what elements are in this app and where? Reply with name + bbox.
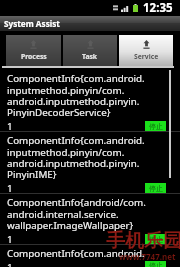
staticText: ComponentInfo{com.android. inputmethod.p… bbox=[7, 72, 145, 119]
staticText: Service bbox=[134, 52, 159, 61]
button[interactable]: Task bbox=[63, 35, 117, 66]
button[interactable]: ComponentInfo{com.android. bbox=[0, 245, 180, 267]
staticText: 停止 bbox=[149, 122, 163, 131]
button[interactable]: 停止 bbox=[145, 121, 166, 131]
staticText: www.7747.net bbox=[119, 251, 176, 262]
button[interactable]: 停止 bbox=[145, 234, 166, 244]
staticText: Task bbox=[82, 52, 98, 61]
staticText: System Assist bbox=[4, 18, 60, 29]
staticText: 1 bbox=[7, 182, 13, 193]
button[interactable]: 停止 bbox=[145, 183, 166, 193]
staticText: 12:35 bbox=[143, 0, 173, 16]
staticText: 手机乐园 bbox=[106, 229, 180, 253]
staticText: 停止 bbox=[149, 235, 163, 244]
button[interactable]: ComponentInfo{com.android. inputmethod.p… bbox=[0, 70, 180, 132]
button[interactable]: ComponentInfo{com.android. inputmethod.p… bbox=[0, 132, 180, 194]
staticText: Process bbox=[21, 52, 47, 61]
staticText: 停止 bbox=[149, 261, 163, 267]
staticText: 1 bbox=[7, 261, 13, 267]
button[interactable]: ComponentInfo{android/com. android.inter… bbox=[0, 194, 180, 245]
button[interactable]: Service bbox=[119, 35, 173, 66]
staticText: ComponentInfo{android/com. android.inter… bbox=[7, 196, 146, 232]
staticText: ComponentInfo{com.android. bbox=[7, 247, 145, 260]
staticText: 停止 bbox=[149, 184, 163, 193]
button[interactable]: Process bbox=[6, 35, 61, 66]
staticText: ComponentInfo{com.android. inputmethod.p… bbox=[7, 134, 145, 181]
staticText: 1 bbox=[7, 233, 13, 244]
staticText: 1 bbox=[7, 120, 13, 131]
button[interactable]: 停止 bbox=[145, 261, 166, 267]
